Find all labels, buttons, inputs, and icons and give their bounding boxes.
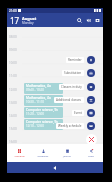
staticText: Computer science, 9c [26,108,58,112]
staticText: 09:00 [9,48,17,52]
staticText: 17 [10,15,20,26]
staticText: Journal [63,154,71,157]
staticText: 12:10 - 12:50 [26,124,44,128]
staticText: 08:00 [9,35,17,39]
staticText: Event [74,111,82,115]
button[interactable]: Feed [79,144,103,162]
staticText: Organizer [37,154,49,157]
staticText: Feed [88,154,94,157]
button[interactable]: Computer science, 9c [24,119,63,130]
button[interactable]: Settings [93,16,102,25]
button[interactable]: Computer science, 9c [24,107,63,118]
staticText: 10:00 [9,61,17,65]
staticText: Substitution [64,71,82,75]
button[interactable]: Reminder [7,56,103,64]
staticText: 15:00 [9,127,17,131]
staticText: 09:40 - 10:20 [26,88,44,92]
button[interactable]: Mathematics, 4a [24,83,63,94]
staticText: Schedule [14,154,25,157]
staticText: 11:20 - 12:00 [26,112,44,116]
button[interactable]: Schedule [7,144,31,162]
staticText: Computer science, 9c [26,120,58,124]
button[interactable]: Sound [84,16,93,25]
staticText: 12:00 [9,88,17,92]
button[interactable]: Close menu [86,134,97,145]
staticText: 14:00 [9,114,17,118]
button[interactable]: Organizer [31,144,55,162]
staticText: Weekly schedule [58,124,82,128]
staticText: August [22,16,37,21]
staticText: 10:30 - 11:10 [26,100,44,104]
staticText: Mathematics, 4a [26,84,51,88]
button[interactable]: Classes in duty [7,83,103,91]
staticText: 11:00 [9,74,17,78]
staticText: Reminder [68,58,82,62]
staticText: Mathematics, 4a [26,96,51,100]
staticText: Classes in duty [61,85,82,89]
button[interactable]: Additional classes [7,96,103,104]
button[interactable]: Weekly schedule [7,122,103,130]
staticText: Additional classes [56,98,82,102]
button[interactable]: Search [75,16,84,25]
staticText: Monday [22,21,34,25]
button[interactable]: Mathematics, 4a [24,95,63,106]
staticText: 16:00 [9,140,17,144]
button[interactable]: Substitution [7,69,103,77]
button[interactable]: Event [7,109,103,117]
staticText: 13:00 [9,101,17,105]
staticText: 21:00 [9,9,17,13]
button[interactable]: Journal [55,144,79,162]
